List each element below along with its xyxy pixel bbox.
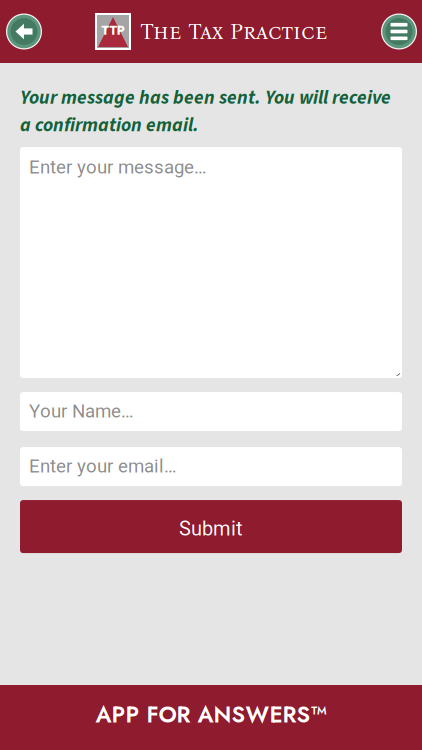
staticText: Your Name… xyxy=(29,400,133,422)
staticText: The Tax Practice xyxy=(140,18,327,45)
staticText: Enter your message… xyxy=(29,156,206,178)
button[interactable]: Submit xyxy=(20,500,402,553)
staticText: APP FOR ANSWERS™ xyxy=(95,698,326,731)
staticText: TTP xyxy=(101,20,124,40)
staticText: Your message has been sent. You will rec… xyxy=(20,84,391,139)
staticText: Enter your email… xyxy=(29,455,176,477)
button[interactable]: Menu xyxy=(377,9,421,53)
button[interactable]: Back xyxy=(2,9,46,53)
staticText: Submit xyxy=(179,517,243,540)
